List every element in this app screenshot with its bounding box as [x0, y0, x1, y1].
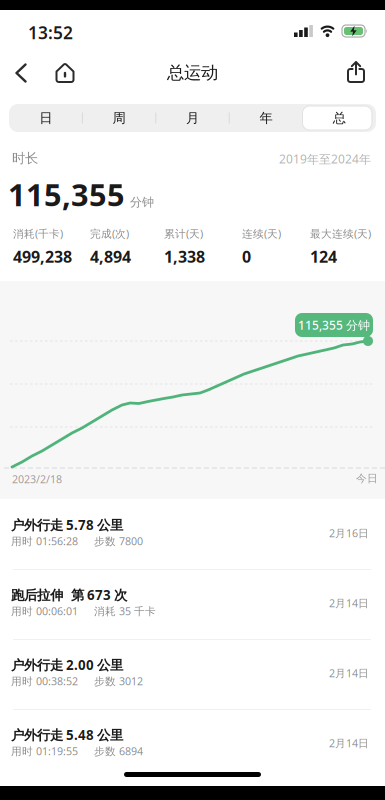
staticText: 分钟 — [130, 195, 154, 210]
staticText: 最大连续(天) — [310, 226, 371, 241]
staticText: 2月14日 — [329, 596, 369, 610]
button[interactable]: 日 — [9, 104, 82, 132]
staticText: 1,338 — [164, 246, 205, 267]
staticText: 124 — [310, 246, 337, 267]
button[interactable]: 周 — [82, 104, 156, 132]
staticText: 用时 01:19:55 — [11, 744, 78, 758]
staticText: 0 — [242, 246, 251, 267]
staticText: 步数 6894 — [94, 744, 143, 758]
staticText: 2023/2/18 — [12, 472, 62, 486]
button[interactable]: Home — [47, 53, 83, 93]
button[interactable]: 户外行走 2.00 公里 — [0, 640, 385, 710]
staticText: 消耗 35 千卡 — [94, 604, 156, 618]
staticText: 跑后拉伸 第 673 次 — [11, 586, 127, 604]
staticText: 总运动 — [167, 62, 218, 83]
staticText: 2月14日 — [329, 666, 369, 680]
button[interactable]: 户外行走 5.78 公里 — [0, 500, 385, 570]
staticText: 13:52 — [28, 21, 73, 44]
staticText: 周 — [113, 110, 126, 126]
staticText: 用时 01:56:28 — [11, 534, 78, 548]
staticText: 总 — [333, 110, 346, 126]
button[interactable]: 总 — [303, 104, 376, 132]
staticText: 年 — [259, 110, 272, 126]
staticText: 连续(天) — [242, 226, 281, 241]
staticText: 4,894 — [90, 246, 131, 267]
button[interactable]: 年 — [229, 104, 303, 132]
staticText: 步数 7800 — [94, 534, 143, 548]
staticText: 2019年至2024年 — [279, 151, 371, 167]
button[interactable]: 月 — [156, 104, 229, 132]
button[interactable]: 户外行走 5.48 公里 — [0, 710, 385, 780]
staticText: 115,355 — [8, 174, 125, 215]
staticText: 月 — [186, 110, 199, 126]
staticText: 今日 — [356, 472, 378, 485]
staticText: 户外行走 5.48 公里 — [11, 726, 123, 744]
staticText: 日 — [39, 110, 52, 126]
staticText: 户外行走 5.78 公里 — [11, 516, 123, 534]
staticText: 完成(次) — [90, 226, 129, 241]
staticText: 115,355 分钟 — [298, 317, 370, 333]
staticText: 户外行走 2.00 公里 — [11, 656, 123, 674]
staticText: 用时 00:38:52 — [11, 674, 78, 688]
staticText: 用时 00:06:01 — [11, 604, 78, 618]
staticText: 499,238 — [13, 246, 72, 267]
staticText: 时长 — [12, 150, 38, 166]
staticText: 2月14日 — [329, 736, 369, 750]
staticText: 累计(天) — [164, 226, 203, 241]
button[interactable]: Back — [4, 53, 38, 93]
button[interactable]: 跑后拉伸 第 673 次 — [0, 570, 385, 640]
staticText: 消耗(千卡) — [13, 226, 63, 241]
staticText: 步数 3012 — [94, 674, 143, 688]
button[interactable]: Share — [336, 52, 376, 92]
staticText: 2月16日 — [329, 526, 369, 540]
